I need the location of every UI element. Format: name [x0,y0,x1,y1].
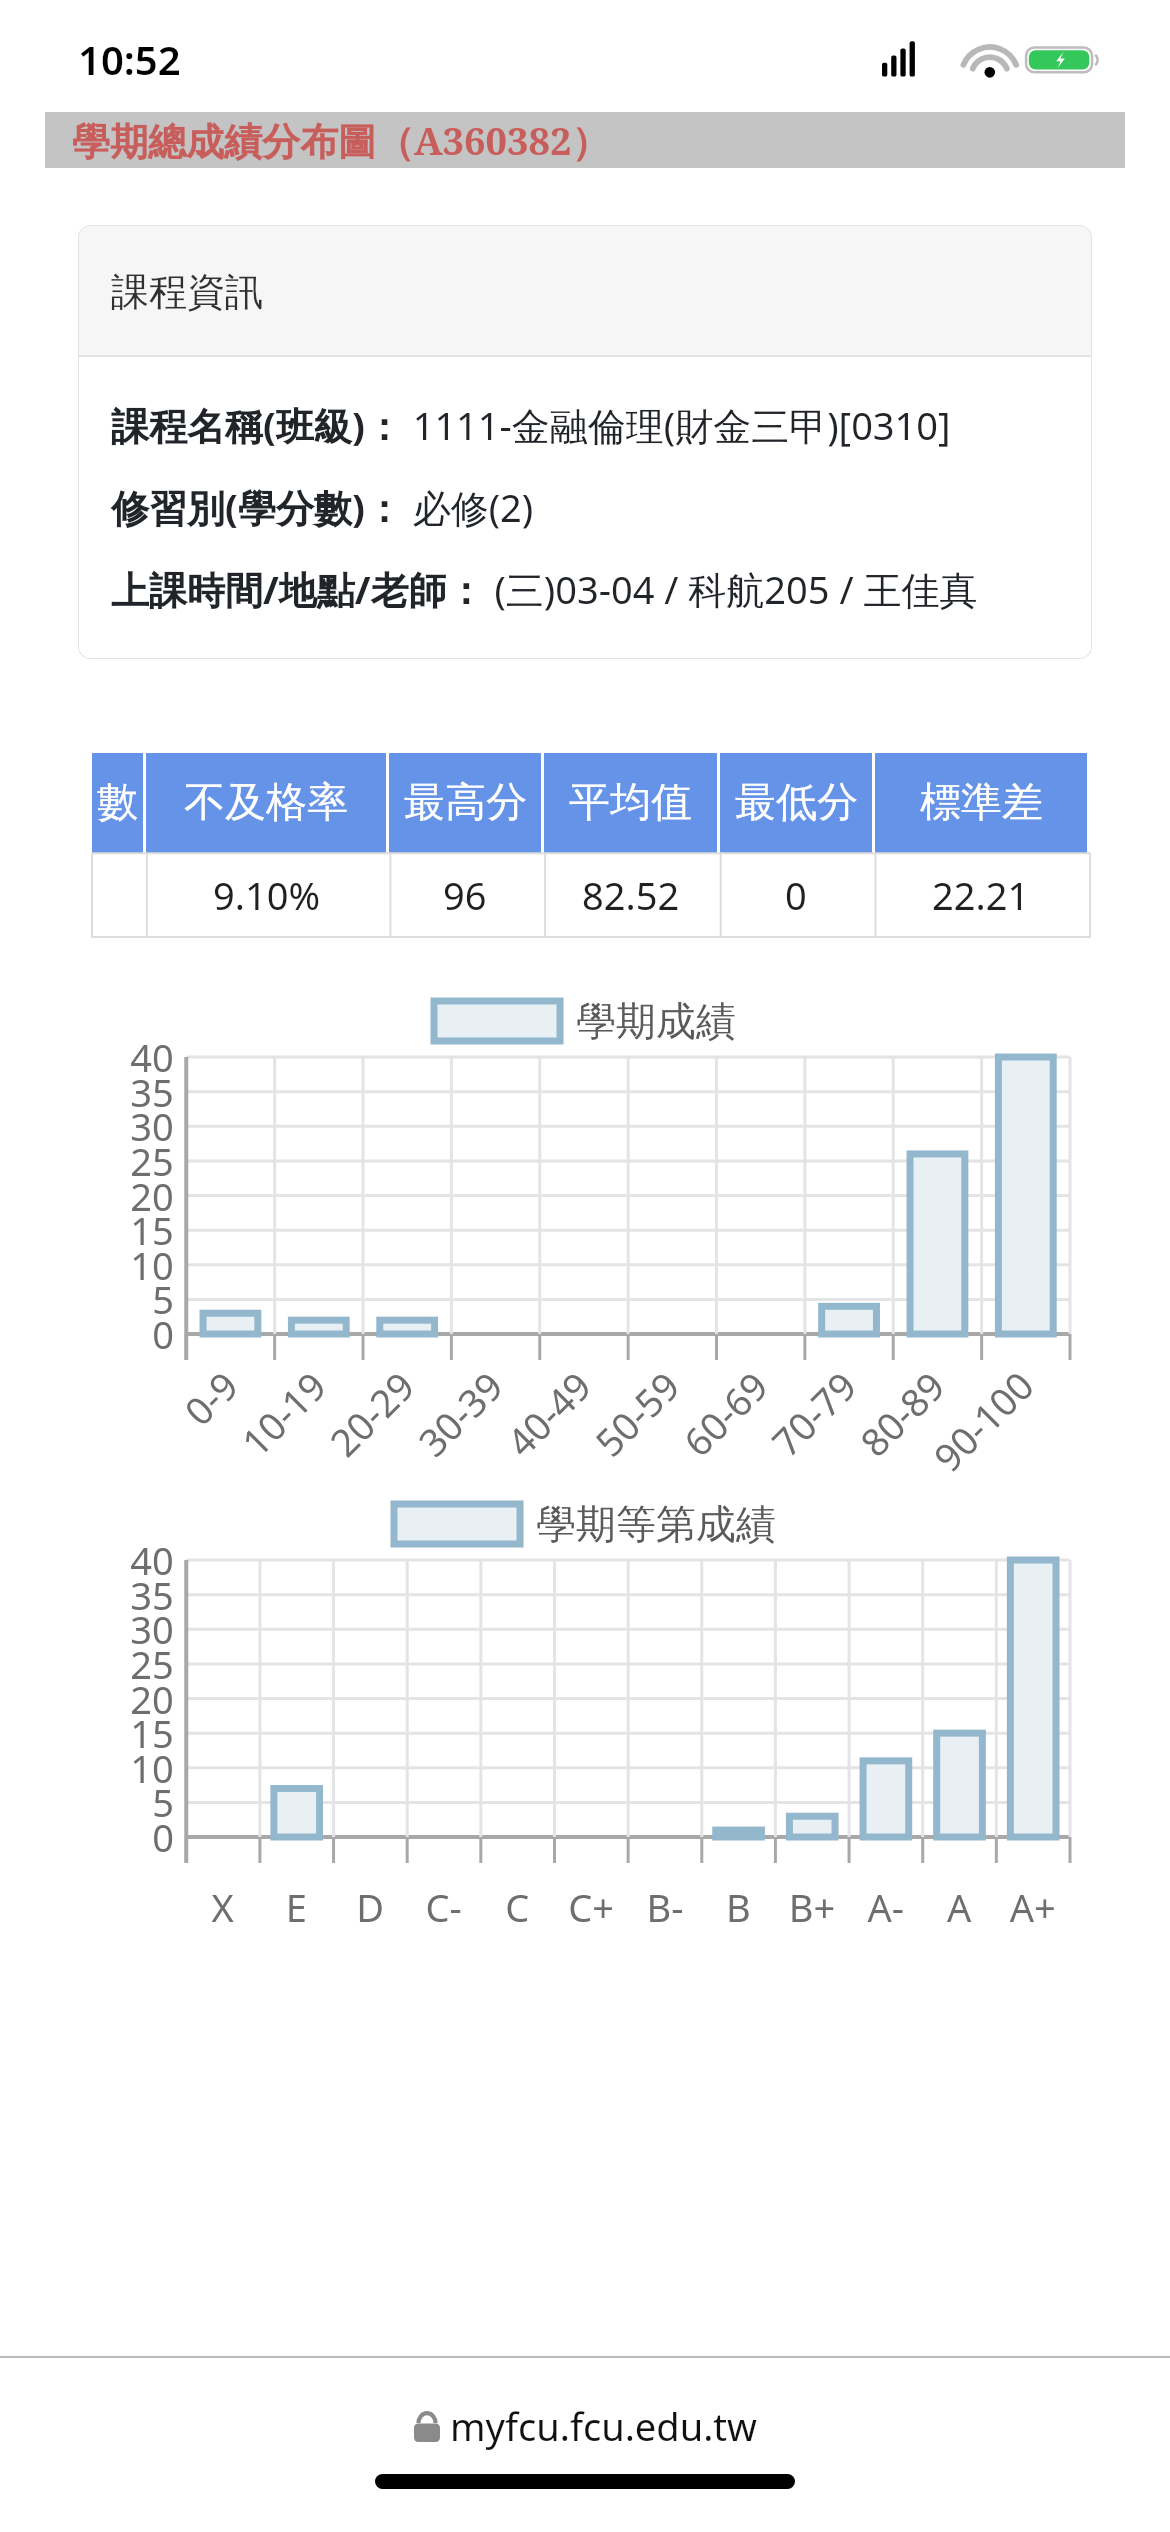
staticText: 9.10% [213,869,320,921]
staticText: 數 [97,777,138,829]
staticText: 標準差 [920,777,1043,829]
staticText: 課程資訊 [111,268,263,316]
staticText: 0 [785,869,807,921]
staticText: myfcu.fcu.edu.tw [450,2400,757,2452]
staticText: 22.21 [932,869,1030,921]
staticText: 學期成績 [576,996,736,1046]
other: Secure connection [414,2410,440,2442]
staticText: 10:52 [78,32,181,86]
staticText: 學期總成績分布圖（A360382） [72,114,610,166]
staticText: 96 [443,869,487,921]
staticText: 82.52 [582,869,680,921]
button[interactable]: 學期總成績分布圖（A360382） [45,112,1125,168]
staticText: 學期等第成績 [536,1499,776,1549]
button[interactable]: Secure connection [414,2400,757,2452]
staticText: 最低分 [735,777,858,829]
staticText: 不及格率 [184,777,348,829]
staticText: 最高分 [404,777,527,829]
staticText: 修習別(學分數)： 必修(2) [111,481,534,533]
staticText: 平均值 [569,777,692,829]
staticText: 上課時間/地點/老師： (三)03-04 / 科航205 / 王佳真 [111,563,978,615]
staticText: 課程名稱(班級)： 1111-金融倫理(財金三甲)[0310] [111,399,951,451]
